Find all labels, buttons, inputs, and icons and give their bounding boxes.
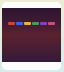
button[interactable] <box>24 22 31 25</box>
button[interactable] <box>16 22 23 25</box>
button[interactable] <box>40 22 47 25</box>
button[interactable] <box>8 22 15 25</box>
button[interactable] <box>48 22 55 25</box>
button[interactable] <box>32 22 39 25</box>
